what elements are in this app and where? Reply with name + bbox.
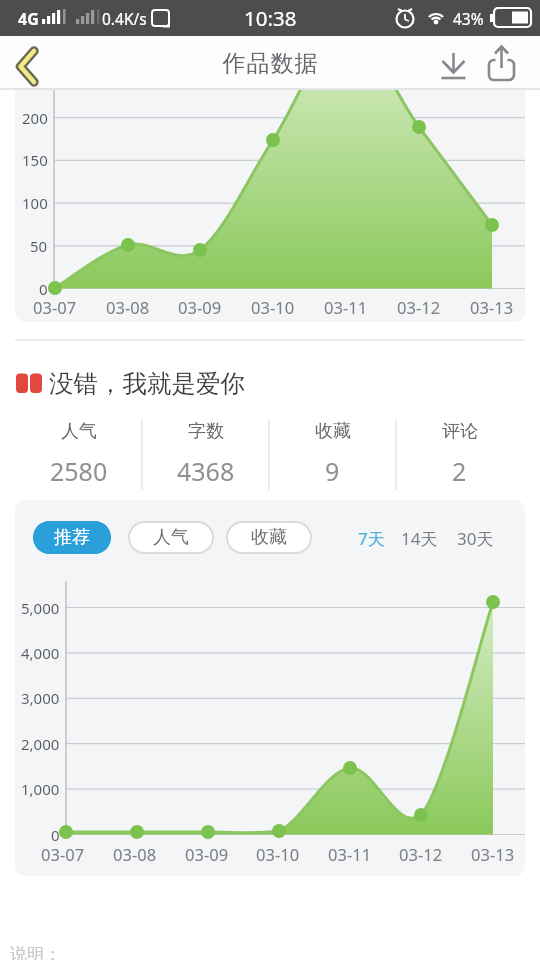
staticText: 03-10 xyxy=(251,296,295,316)
staticText: 03-08 xyxy=(106,296,150,316)
staticText: 5,000 xyxy=(21,598,60,618)
button[interactable]: 30天 xyxy=(452,527,498,549)
button[interactable]: 收藏 xyxy=(228,523,310,552)
staticText: 收藏 xyxy=(251,526,287,549)
button[interactable] xyxy=(351,527,391,549)
button[interactable]: 人气 xyxy=(130,523,212,552)
staticText: 03-07 xyxy=(41,843,85,863)
staticText: 03-09 xyxy=(185,843,229,863)
staticText: 03-13 xyxy=(470,296,514,316)
staticText: 4,000 xyxy=(21,643,60,663)
button[interactable]: 字数 xyxy=(142,407,269,500)
staticText: 人气 xyxy=(61,420,97,442)
button[interactable]: 人气 xyxy=(15,407,142,500)
button[interactable]: 收藏 xyxy=(269,407,396,500)
staticText: 03-07 xyxy=(33,296,77,316)
staticText: 字数 xyxy=(188,420,224,442)
button[interactable]: 评论 xyxy=(396,407,523,500)
staticText: 2580 xyxy=(50,454,108,488)
staticText: 没错，我就是爱你 xyxy=(49,368,245,399)
staticText: 03-13 xyxy=(471,843,515,863)
button[interactable]: 推荐 xyxy=(33,521,111,554)
staticText: 150 xyxy=(22,150,48,170)
staticText: 03-11 xyxy=(324,296,368,316)
button[interactable] xyxy=(478,36,526,90)
staticText: 03-10 xyxy=(256,843,300,863)
staticText: 03-08 xyxy=(113,843,157,863)
staticText: 4G xyxy=(18,8,39,28)
staticText: 作品数据 xyxy=(222,49,318,78)
staticText: 03-12 xyxy=(399,843,443,863)
staticText: 10:38 xyxy=(244,4,297,32)
staticText: 推荐 xyxy=(54,526,90,549)
staticText: 100 xyxy=(22,193,48,213)
staticText: 14天 xyxy=(401,527,438,549)
staticText: 03-12 xyxy=(397,296,441,316)
staticText: 7天 xyxy=(358,527,385,549)
staticText: 评论 xyxy=(442,420,478,442)
staticText: 0 xyxy=(51,825,60,845)
staticText: 2 xyxy=(452,454,467,488)
staticText: 30天 xyxy=(457,527,494,549)
staticText: 2,000 xyxy=(21,734,60,754)
staticText: 200 xyxy=(22,108,48,128)
staticText: 3,000 xyxy=(21,688,60,708)
button[interactable] xyxy=(432,36,476,90)
staticText: 说明： xyxy=(10,944,61,960)
staticText: 0 xyxy=(39,279,48,299)
staticText: 50 xyxy=(30,236,48,256)
staticText: 43% xyxy=(453,8,484,28)
staticText: 收藏 xyxy=(315,420,351,442)
staticText: 4368 xyxy=(177,454,235,488)
staticText: 人气 xyxy=(153,526,189,549)
staticText: 1,000 xyxy=(21,779,60,799)
staticText: 9 xyxy=(325,454,340,488)
staticText: 03-11 xyxy=(328,843,372,863)
button[interactable]: 14天 xyxy=(396,527,442,549)
staticText: 0.4K/s xyxy=(102,8,147,28)
button[interactable] xyxy=(0,36,54,90)
staticText: 03-09 xyxy=(178,296,222,316)
